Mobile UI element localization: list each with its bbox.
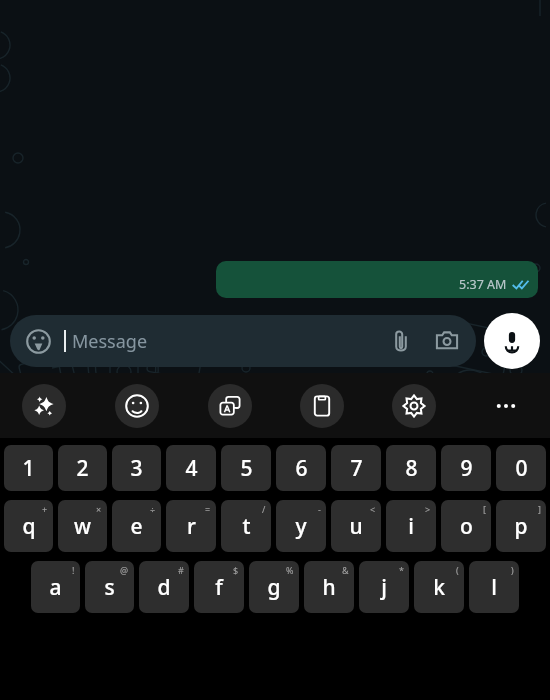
staticText: r: [187, 512, 196, 541]
staticText: [: [483, 503, 486, 515]
button[interactable]: a: [31, 561, 80, 613]
button[interactable]: r: [166, 500, 216, 552]
button[interactable]: Camera: [432, 326, 462, 356]
button[interactable]: Settings: [392, 384, 436, 428]
staticText: k: [433, 573, 445, 602]
button[interactable]: j: [359, 561, 409, 613]
staticText: ): [511, 564, 514, 576]
staticText: 9: [460, 454, 473, 483]
staticText: t: [242, 512, 251, 541]
staticText: 4: [185, 454, 198, 483]
staticText: l: [491, 573, 497, 602]
button[interactable]: g: [249, 561, 299, 613]
button[interactable]: k: [414, 561, 464, 613]
staticText: (: [456, 564, 459, 576]
button[interactable]: h: [304, 561, 354, 613]
button[interactable]: More options: [484, 384, 528, 428]
button[interactable]: Voice message: [484, 313, 540, 369]
button[interactable]: i: [386, 500, 436, 552]
button[interactable]: Translate: [208, 384, 252, 428]
staticText: i: [408, 512, 414, 541]
button[interactable]: s: [85, 561, 134, 613]
staticText: s: [104, 573, 115, 602]
button[interactable]: f: [194, 561, 244, 613]
staticText: y: [295, 512, 307, 541]
staticText: *: [399, 564, 404, 576]
staticText: ]: [538, 503, 541, 515]
staticText: ×: [96, 503, 102, 515]
button[interactable]: 8: [386, 445, 436, 491]
staticText: d: [157, 573, 171, 602]
staticText: @: [120, 564, 129, 576]
button[interactable]: d: [139, 561, 189, 613]
staticText: /: [262, 503, 266, 515]
staticText: +: [42, 503, 48, 515]
staticText: 8: [405, 454, 418, 483]
button[interactable]: p: [496, 500, 546, 552]
button[interactable]: l: [469, 561, 519, 613]
staticText: h: [322, 573, 336, 602]
button[interactable]: 0: [496, 445, 546, 491]
staticText: p: [514, 512, 528, 541]
staticText: f: [215, 573, 223, 602]
button[interactable]: 7: [331, 445, 381, 491]
staticText: 0: [515, 454, 528, 483]
button[interactable]: Attach: [386, 326, 416, 356]
staticText: <: [370, 503, 376, 515]
button[interactable]: y: [276, 500, 326, 552]
button[interactable]: Emoji: [115, 384, 159, 428]
staticText: j: [381, 573, 387, 602]
staticText: 3: [130, 454, 143, 483]
button[interactable]: Clipboard: [300, 384, 344, 428]
button[interactable]: Emoji: [24, 327, 52, 355]
button[interactable]: AI assist: [22, 384, 66, 428]
button[interactable]: w: [58, 500, 107, 552]
staticText: !: [72, 564, 75, 576]
staticText: 1: [22, 454, 35, 483]
staticText: q: [22, 512, 36, 541]
staticText: 2: [76, 454, 89, 483]
button[interactable]: 2: [58, 445, 107, 491]
button[interactable]: t: [221, 500, 271, 552]
staticText: %: [286, 564, 294, 576]
staticText: #: [178, 564, 184, 576]
button[interactable]: 9: [441, 445, 491, 491]
button[interactable]: 3: [112, 445, 161, 491]
staticText: w: [74, 512, 91, 541]
staticText: Message: [72, 329, 148, 354]
staticText: &: [342, 564, 349, 576]
staticText: g: [267, 573, 281, 602]
staticText: 6: [295, 454, 308, 483]
staticText: $: [233, 564, 239, 576]
staticText: o: [460, 512, 473, 541]
button[interactable]: Emoji: [10, 315, 476, 367]
button[interactable]: 6: [276, 445, 326, 491]
button[interactable]: 5: [221, 445, 271, 491]
button[interactable]: o: [441, 500, 491, 552]
staticText: 5:37 AM: [459, 276, 507, 293]
staticText: ÷: [150, 503, 156, 515]
staticText: u: [349, 512, 363, 541]
button[interactable]: 4: [166, 445, 216, 491]
staticText: 7: [350, 454, 363, 483]
button[interactable]: e: [112, 500, 161, 552]
button[interactable]: 1: [4, 445, 53, 491]
button[interactable]: q: [4, 500, 53, 552]
staticText: 5: [240, 454, 253, 483]
staticText: e: [130, 512, 143, 541]
staticText: =: [205, 503, 211, 515]
staticText: -: [318, 503, 321, 515]
button[interactable]: u: [331, 500, 381, 552]
button[interactable]: 5:37 AM: [216, 261, 538, 298]
staticText: >: [425, 503, 431, 515]
staticText: a: [49, 573, 62, 602]
